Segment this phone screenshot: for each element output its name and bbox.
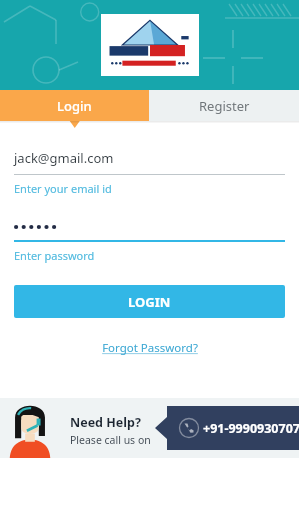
button[interactable]: Register — [149, 90, 299, 121]
button[interactable]: Need Help? — [70, 414, 151, 447]
button[interactable]: Call +91-9990930707 — [155, 398, 299, 458]
staticText: Login — [57, 97, 92, 115]
staticText: +91-9990930707 — [203, 420, 299, 437]
staticText: LOGIN — [128, 293, 171, 311]
staticText: Enter password — [14, 248, 95, 263]
button[interactable]: Login — [0, 90, 149, 121]
staticText: jack@gmail.com — [14, 149, 114, 167]
staticText: Forgot Password? — [102, 340, 198, 356]
button[interactable]: Forgot Password? — [98, 336, 202, 360]
staticText: Need Help? — [70, 414, 141, 431]
staticText: Register — [199, 97, 250, 115]
staticText: Enter your email id — [14, 181, 112, 196]
staticText: Please call us on — [70, 433, 151, 447]
button[interactable]: LOGIN — [14, 285, 285, 318]
